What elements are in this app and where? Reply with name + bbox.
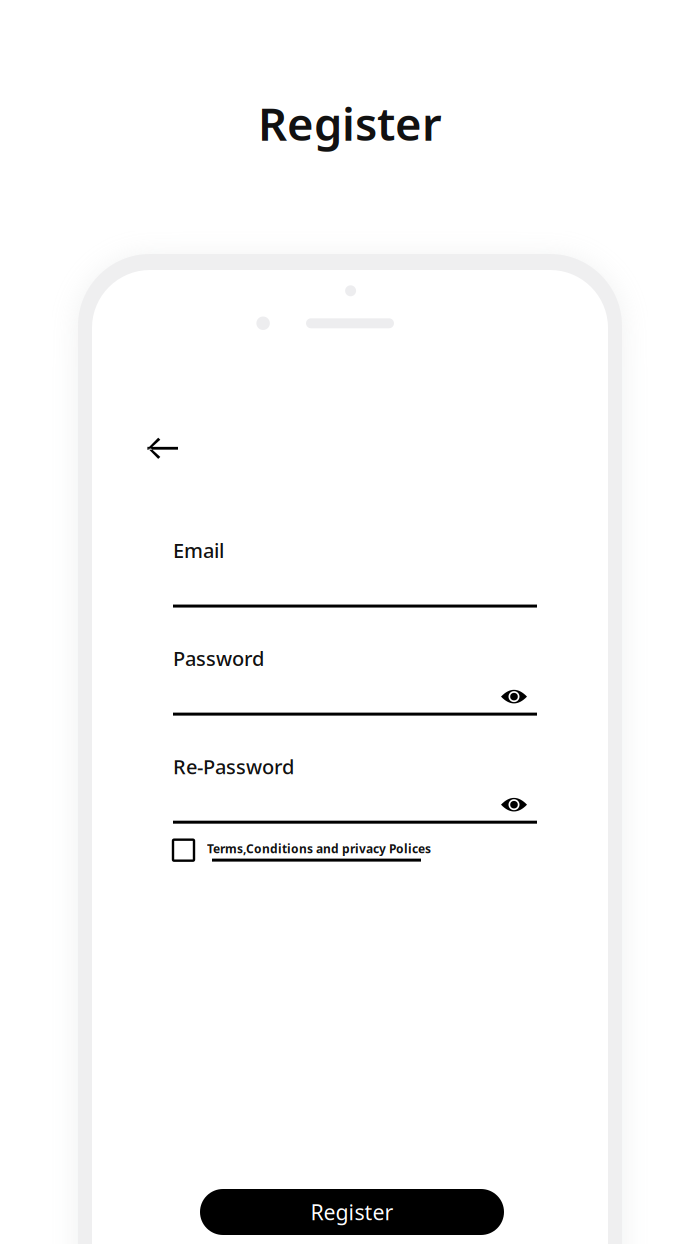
button[interactable]: Back bbox=[141, 431, 185, 466]
button[interactable]: Show password bbox=[501, 798, 537, 821]
staticText: Register bbox=[310, 1198, 393, 1226]
staticText: Terms,Conditions and privacy Polices bbox=[207, 841, 431, 857]
staticText: Email bbox=[173, 537, 224, 564]
button[interactable]: Accept terms bbox=[173, 840, 194, 861]
button[interactable]: Register bbox=[200, 1189, 504, 1235]
staticText: Register bbox=[258, 93, 442, 153]
staticText: Password bbox=[173, 645, 264, 672]
button[interactable]: Terms,Conditions and privacy Polices bbox=[207, 840, 431, 862]
staticText: Re-Password bbox=[173, 753, 294, 780]
button[interactable]: Show password bbox=[501, 690, 537, 713]
